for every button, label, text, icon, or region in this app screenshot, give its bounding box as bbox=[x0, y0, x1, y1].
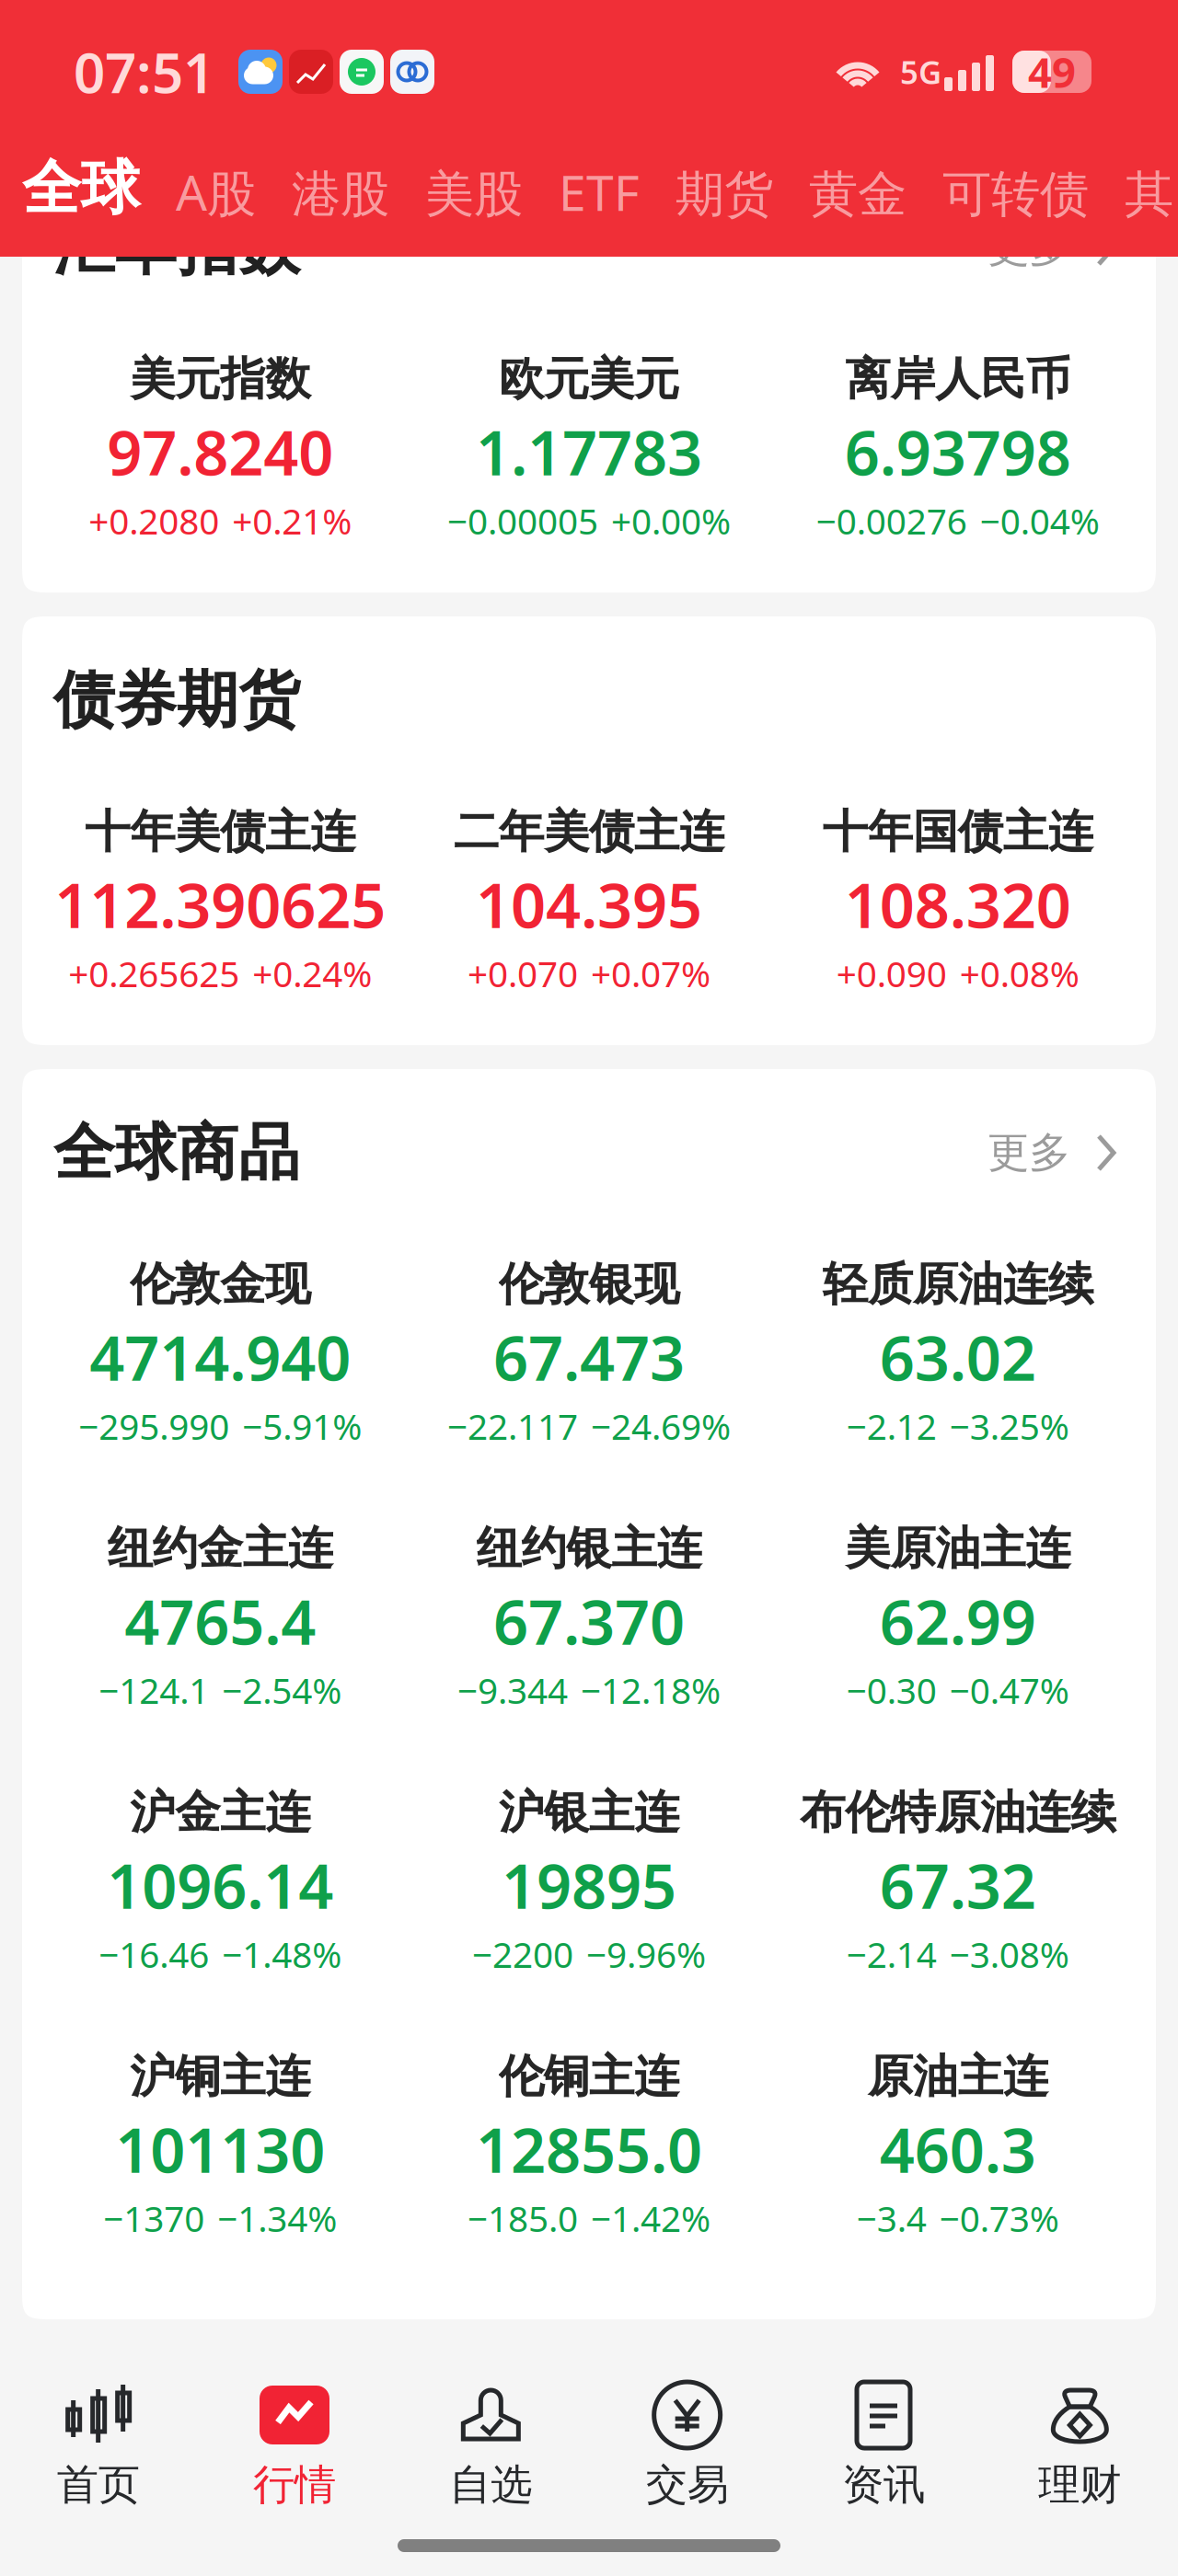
button[interactable]: 期货 bbox=[640, 167, 773, 224]
button[interactable]: 伦铜主连 bbox=[405, 2046, 773, 2245]
button[interactable]: 沪金主连 bbox=[36, 1782, 405, 1981]
button[interactable]: ETF bbox=[523, 167, 640, 224]
staticText: 更多 bbox=[987, 1127, 1070, 1178]
staticText: 更多 bbox=[987, 222, 1070, 273]
staticText: −9.96% bbox=[586, 1930, 706, 1978]
staticText: +0.08% bbox=[960, 950, 1079, 997]
staticText: 伦敦金现 bbox=[130, 1256, 310, 1312]
staticText: 沪银主连 bbox=[499, 1785, 679, 1840]
staticText: 期货 bbox=[676, 164, 773, 224]
staticText: 108.320 bbox=[845, 864, 1071, 945]
staticText: 67.32 bbox=[880, 1844, 1036, 1926]
staticText: −295.990 bbox=[79, 1402, 229, 1450]
staticText: 纽约银主连 bbox=[476, 1520, 702, 1576]
staticText: 美元指数 bbox=[130, 351, 310, 407]
button[interactable]: 离岸人民币 bbox=[773, 349, 1142, 547]
staticText: 5G bbox=[900, 51, 941, 93]
staticText: −22.117 bbox=[447, 1402, 578, 1450]
button[interactable]: 伦敦金现 bbox=[36, 1254, 405, 1453]
staticText: 自选 bbox=[449, 2459, 532, 2511]
button[interactable]: 黄金 bbox=[773, 167, 907, 224]
staticText: −0.30 bbox=[846, 1666, 937, 1714]
staticText: −0.47% bbox=[949, 1666, 1069, 1714]
button[interactable]: 纽约金主连 bbox=[36, 1518, 405, 1717]
staticText: −1.48% bbox=[222, 1930, 342, 1978]
staticText: 行情 bbox=[253, 2459, 336, 2511]
staticText: −24.69% bbox=[591, 1402, 731, 1450]
staticText: 104.395 bbox=[476, 864, 702, 945]
staticText: −16.46 bbox=[99, 1930, 209, 1978]
button[interactable]: 其 bbox=[1089, 167, 1173, 224]
staticText: 4714.940 bbox=[90, 1316, 351, 1398]
button[interactable]: 全球 bbox=[22, 158, 140, 224]
staticText: 十年美债主连 bbox=[85, 804, 356, 860]
button[interactable]: 交易 bbox=[589, 2319, 785, 2515]
button[interactable]: 行情 bbox=[196, 2319, 393, 2515]
staticText: 资讯 bbox=[842, 2459, 925, 2511]
staticText: 交易 bbox=[646, 2459, 729, 2511]
staticText: −3.08% bbox=[949, 1930, 1069, 1978]
button[interactable]: 港股 bbox=[256, 167, 389, 224]
button[interactable]: 欧元美元 bbox=[405, 349, 773, 547]
button[interactable]: 可转债 bbox=[907, 167, 1089, 224]
staticText: −2.12 bbox=[846, 1402, 937, 1450]
staticText: 港股 bbox=[292, 164, 389, 224]
staticText: −0.00005 bbox=[447, 497, 598, 544]
staticText: −0.73% bbox=[939, 2194, 1059, 2242]
staticText: −0.00276 bbox=[816, 497, 967, 544]
button[interactable]: 更多 bbox=[987, 222, 1125, 273]
staticText: 49 bbox=[1028, 44, 1076, 99]
staticText: 6.93798 bbox=[845, 411, 1071, 492]
staticText: +0.070 bbox=[468, 950, 578, 997]
button[interactable]: 沪铜主连 bbox=[36, 2046, 405, 2245]
staticText: +0.090 bbox=[836, 950, 947, 997]
button[interactable]: 纽约银主连 bbox=[405, 1518, 773, 1717]
staticText: 沪金主连 bbox=[130, 1785, 310, 1840]
staticText: −2.14 bbox=[846, 1930, 937, 1978]
staticText: 理财 bbox=[1038, 2459, 1121, 2511]
button[interactable]: 更多 bbox=[987, 1127, 1125, 1178]
staticText: −1370 bbox=[103, 2194, 205, 2242]
button[interactable]: 首页 bbox=[0, 2319, 196, 2515]
staticText: 轻质原油连续 bbox=[822, 1256, 1093, 1312]
button[interactable]: A股 bbox=[140, 167, 256, 224]
button[interactable]: 沪银主连 bbox=[405, 1782, 773, 1981]
staticText: 1096.14 bbox=[107, 1844, 333, 1926]
button[interactable]: 美股 bbox=[389, 167, 523, 224]
staticText: 伦敦银现 bbox=[499, 1256, 679, 1312]
button[interactable]: 布伦特原油连续 bbox=[773, 1782, 1142, 1981]
staticText: 4765.4 bbox=[125, 1580, 316, 1662]
staticText: 纽约金主连 bbox=[107, 1520, 333, 1576]
staticText: 离岸人民币 bbox=[845, 351, 1071, 407]
staticText: +0.21% bbox=[232, 497, 352, 544]
staticText: +0.07% bbox=[591, 950, 710, 997]
button[interactable]: 原油主连 bbox=[773, 2046, 1142, 2245]
staticText: 美股 bbox=[425, 164, 523, 224]
button[interactable]: 资讯 bbox=[785, 2319, 982, 2515]
staticText: 原油主连 bbox=[868, 2049, 1048, 2104]
staticText: 全球 bbox=[22, 152, 140, 224]
button[interactable]: 理财 bbox=[982, 2319, 1178, 2515]
button[interactable]: 轻质原油连续 bbox=[773, 1254, 1142, 1453]
staticText: 十年国债主连 bbox=[822, 804, 1093, 860]
button[interactable]: 二年美债主连 bbox=[405, 801, 773, 1000]
button[interactable]: 伦敦银现 bbox=[405, 1254, 773, 1453]
staticText: −3.4 bbox=[857, 2194, 926, 2242]
staticText: +0.24% bbox=[252, 950, 372, 997]
staticText: ETF bbox=[559, 159, 640, 224]
staticText: 二年美债主连 bbox=[454, 804, 724, 860]
staticText: 欧元美元 bbox=[499, 351, 679, 407]
button[interactable]: 美原油主连 bbox=[773, 1518, 1142, 1717]
staticText: 460.3 bbox=[880, 2108, 1036, 2190]
button[interactable]: 自选 bbox=[393, 2319, 589, 2515]
button[interactable]: 十年国债主连 bbox=[773, 801, 1142, 1000]
button[interactable]: 美元指数 bbox=[36, 349, 405, 547]
staticText: 67.370 bbox=[493, 1580, 685, 1662]
staticText: 其 bbox=[1125, 164, 1173, 224]
button[interactable]: 十年美债主连 bbox=[36, 801, 405, 1000]
staticText: 黄金 bbox=[809, 164, 907, 224]
staticText: 全球商品 bbox=[53, 1115, 300, 1190]
staticText: 19895 bbox=[502, 1844, 676, 1926]
staticText: 63.02 bbox=[880, 1316, 1036, 1398]
staticText: 首页 bbox=[57, 2459, 140, 2511]
